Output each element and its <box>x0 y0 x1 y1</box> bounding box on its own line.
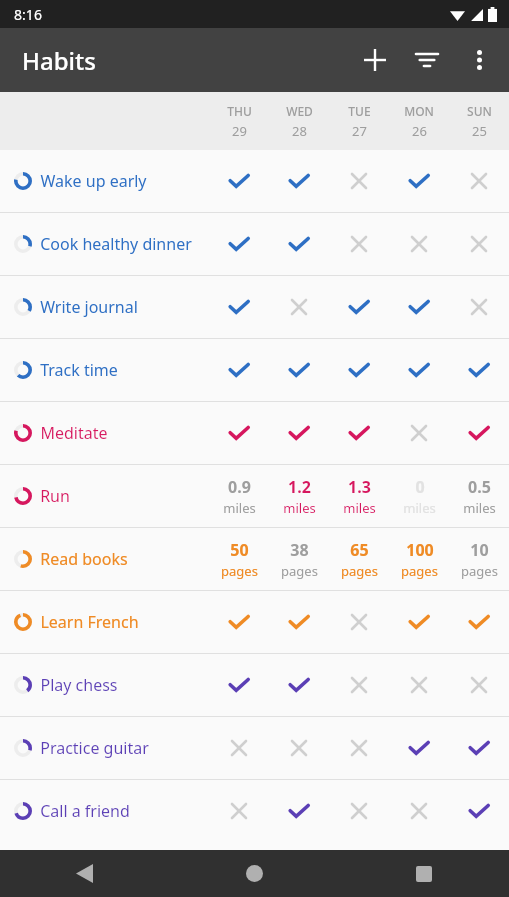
button[interactable] <box>449 150 509 212</box>
button[interactable] <box>389 591 449 653</box>
staticText: 100 <box>406 539 434 561</box>
staticText: Meditate <box>40 422 108 444</box>
button[interactable] <box>269 780 329 842</box>
button[interactable] <box>449 276 509 338</box>
button[interactable] <box>269 339 329 401</box>
button[interactable] <box>269 717 329 779</box>
button[interactable]: Home <box>169 850 339 897</box>
button[interactable] <box>209 150 269 212</box>
staticText: pages <box>281 562 318 580</box>
button[interactable] <box>269 150 329 212</box>
button[interactable] <box>449 654 509 716</box>
button[interactable]: Add habit <box>349 34 401 86</box>
button[interactable] <box>209 591 269 653</box>
button[interactable]: Call a friend <box>0 780 509 842</box>
staticText: 50 <box>230 539 249 561</box>
button[interactable] <box>449 213 509 275</box>
button[interactable] <box>329 276 389 338</box>
button[interactable]: Cook healthy dinner <box>0 213 509 275</box>
staticText: Cook healthy dinner <box>40 233 192 255</box>
button[interactable] <box>329 213 389 275</box>
staticText: miles <box>463 499 496 517</box>
staticText: Play chess <box>40 674 118 696</box>
button[interactable] <box>449 591 509 653</box>
staticText: 10 <box>470 539 489 561</box>
staticText: Track time <box>40 359 118 381</box>
button[interactable] <box>209 717 269 779</box>
button[interactable]: Play chess <box>0 654 509 716</box>
button[interactable]: More options <box>453 34 505 86</box>
staticText: miles <box>343 499 376 517</box>
button[interactable]: 0.5 <box>449 465 509 527</box>
button[interactable] <box>389 276 449 338</box>
button[interactable] <box>389 213 449 275</box>
button[interactable] <box>209 654 269 716</box>
staticText: MON <box>404 103 434 119</box>
button[interactable] <box>389 339 449 401</box>
button[interactable] <box>209 402 269 464</box>
staticText: THU <box>227 103 252 119</box>
button[interactable]: Meditate <box>0 402 509 464</box>
button[interactable]: 1.2 <box>269 465 329 527</box>
button[interactable]: 1.3 <box>329 465 389 527</box>
button[interactable] <box>389 654 449 716</box>
button[interactable] <box>269 654 329 716</box>
button[interactable]: 65 <box>329 528 389 590</box>
staticText: TUE <box>348 103 371 119</box>
staticText: 1.2 <box>288 476 311 498</box>
button[interactable] <box>449 402 509 464</box>
button[interactable] <box>389 780 449 842</box>
button[interactable] <box>389 717 449 779</box>
button[interactable]: Run <box>0 465 509 527</box>
button[interactable]: 100 <box>389 528 449 590</box>
button[interactable]: 38 <box>269 528 329 590</box>
button[interactable] <box>329 717 389 779</box>
button[interactable] <box>449 717 509 779</box>
button[interactable] <box>209 276 269 338</box>
button[interactable] <box>329 402 389 464</box>
button[interactable] <box>269 591 329 653</box>
button[interactable]: 0.9 <box>209 465 269 527</box>
button[interactable] <box>329 150 389 212</box>
button[interactable] <box>269 402 329 464</box>
staticText: Read books <box>40 548 128 570</box>
button[interactable] <box>449 339 509 401</box>
button[interactable] <box>269 276 329 338</box>
button[interactable]: Learn French <box>0 591 509 653</box>
staticText: 65 <box>350 539 369 561</box>
button[interactable]: Track time <box>0 339 509 401</box>
button[interactable] <box>209 213 269 275</box>
staticText: Write journal <box>40 296 138 318</box>
button[interactable] <box>329 591 389 653</box>
staticText: Run <box>40 485 70 507</box>
button[interactable]: 0 <box>389 465 449 527</box>
button[interactable] <box>389 402 449 464</box>
button[interactable]: Recent apps <box>339 850 509 897</box>
button[interactable] <box>449 780 509 842</box>
button[interactable] <box>209 780 269 842</box>
button[interactable] <box>269 213 329 275</box>
staticText: 25 <box>472 122 487 140</box>
button[interactable]: Practice guitar <box>0 717 509 779</box>
staticText: 29 <box>232 122 247 140</box>
button[interactable]: Back <box>0 850 169 897</box>
staticText: Call a friend <box>40 800 130 822</box>
button[interactable]: Write journal <box>0 276 509 338</box>
button[interactable] <box>329 339 389 401</box>
button[interactable]: Read books <box>0 528 509 590</box>
staticText: pages <box>401 562 438 580</box>
button[interactable] <box>329 654 389 716</box>
staticText: 0.9 <box>228 476 251 498</box>
button[interactable]: 50 <box>209 528 269 590</box>
button[interactable]: Filter <box>401 34 453 86</box>
button[interactable] <box>209 339 269 401</box>
staticText: 27 <box>352 122 367 140</box>
staticText: 1.3 <box>348 476 371 498</box>
button[interactable]: 10 <box>449 528 509 590</box>
button[interactable]: Wake up early <box>0 150 509 212</box>
staticText: WED <box>286 103 313 119</box>
button[interactable] <box>389 150 449 212</box>
staticText: Habits <box>22 44 96 77</box>
staticText: miles <box>403 499 436 517</box>
button[interactable] <box>329 780 389 842</box>
